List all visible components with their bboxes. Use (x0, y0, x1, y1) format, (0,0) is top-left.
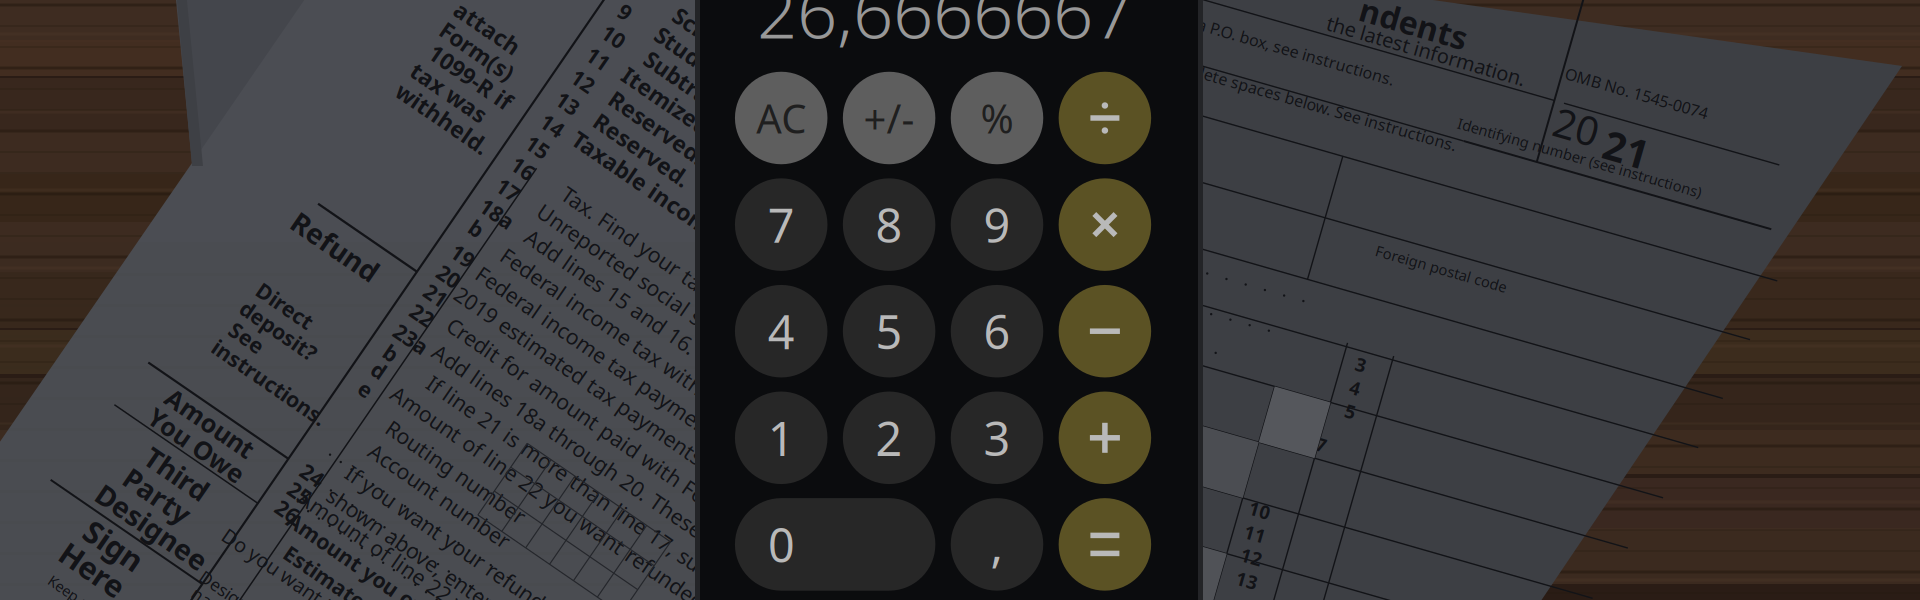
staticText: attach (450, 13, 525, 43)
staticText: 21 (1603, 122, 1649, 175)
staticText: Here (56, 549, 128, 590)
staticText: e (359, 375, 372, 403)
staticText: 5 (876, 300, 903, 362)
staticText: Amount (159, 406, 261, 440)
staticText: /county (1140, 118, 1198, 139)
staticText: ve a P.O. box, see instructions. (1173, 38, 1398, 59)
staticText: Taxable income. S (557, 178, 758, 208)
button[interactable]: Zero (735, 498, 935, 591)
staticText: instructions. (202, 368, 336, 397)
staticText: 1099-R if (423, 62, 519, 92)
staticText: , (990, 513, 1003, 575)
button[interactable]: Six (951, 285, 1043, 377)
staticText: o complete spaces below. See instruction… (1139, 90, 1462, 112)
staticText: Form(s) (435, 36, 520, 66)
staticText: deposit? (235, 316, 323, 344)
button[interactable]: One (735, 391, 827, 484)
staticText: % (980, 91, 1013, 144)
staticText: 26,6666667 (757, 0, 1133, 58)
staticText: Unreported social secu (519, 260, 750, 288)
staticText: the latest information. (1323, 37, 1529, 64)
staticText: 15 (526, 133, 550, 161)
staticText: 1 (768, 407, 795, 469)
staticText: 0 (768, 513, 795, 575)
staticText: Add lines 15 and 16. Thi (506, 288, 746, 316)
staticText: Reserved. (601, 112, 712, 142)
button[interactable]: Decimal separator (951, 498, 1043, 591)
staticText: 8 (876, 194, 903, 256)
staticText: Amount of line 22 you want refunded to y… (355, 499, 788, 528)
staticText: 9 (619, 0, 631, 26)
staticText: Federal income tax withheld (478, 319, 763, 348)
staticText: 24 (300, 461, 324, 489)
staticText: 11 (586, 45, 610, 73)
button[interactable]: Percent (951, 72, 1043, 164)
button[interactable]: Two (843, 391, 935, 484)
button[interactable]: Plus (1059, 391, 1151, 484)
button[interactable]: Equals (1059, 498, 1151, 591)
staticText: 26 (275, 497, 299, 525)
staticText: 4 (1350, 375, 1361, 400)
staticText: Keep a (46, 582, 92, 600)
staticText: 18a (479, 199, 516, 228)
button[interactable]: Multiply (1059, 178, 1151, 271)
staticText: Estimated tax pe (270, 587, 449, 600)
button[interactable]: Four (735, 285, 827, 377)
staticText: 3 (983, 407, 1010, 469)
staticText: Identifying number (see instructions) (1453, 148, 1706, 167)
staticText: AC (756, 91, 806, 144)
staticText: You Owe (141, 428, 252, 462)
staticText: Amount of line 22 you want (276, 560, 555, 588)
staticText: shown above, enter that address here (296, 586, 675, 600)
staticText: b (384, 339, 397, 367)
staticText: Party (120, 477, 195, 514)
button[interactable]: Minus (1059, 285, 1151, 377)
staticText: 20 (1554, 100, 1600, 153)
staticText: 25 (288, 479, 312, 507)
staticText: Federal income tax payments and a (447, 358, 805, 387)
staticText: Tax. Find your tax in (546, 234, 748, 263)
staticText: 2019 estimated tax payments with Form (421, 392, 827, 420)
staticText: name (189, 593, 236, 600)
staticText: 12 (1241, 544, 1263, 569)
button[interactable]: Seven (735, 178, 827, 271)
staticText: 5 (1345, 399, 1356, 424)
staticText: Amount you owe. Su (270, 565, 489, 593)
staticText: Scho (671, 13, 724, 43)
staticText: b (470, 214, 483, 243)
staticText: Reserved. (586, 135, 697, 165)
staticText: 23a (392, 325, 429, 353)
staticText: If line 21 is more than line 17, subtrac… (391, 488, 821, 516)
staticText: 2 (876, 407, 903, 469)
staticText: atement. (1081, 279, 1155, 302)
button[interactable]: Eight (843, 178, 935, 271)
staticText: Designee' (194, 586, 275, 600)
button[interactable]: Plus minus (843, 72, 935, 164)
staticText: 22 (410, 301, 434, 329)
staticText: Direct (253, 291, 317, 320)
staticText: +/- (864, 91, 915, 144)
staticText: 14 (540, 111, 564, 140)
staticText: Designee (87, 508, 216, 546)
staticText: If you want your refund check mailed (315, 562, 689, 590)
staticText: 11 (1244, 521, 1266, 546)
staticText: 10 (602, 22, 626, 51)
staticText: 12 (571, 67, 595, 95)
button[interactable]: Three (951, 391, 1043, 484)
staticText: ndents (1358, 2, 1469, 45)
button[interactable]: Nine (951, 178, 1043, 271)
staticText: 17 (496, 176, 520, 204)
staticText: 9 (983, 194, 1010, 256)
staticText: Account number (356, 482, 523, 510)
staticText: Credit for amount paid with Form (419, 404, 758, 433)
staticText: 7 (768, 194, 795, 256)
button[interactable]: All clear (735, 72, 827, 164)
button[interactable]: Five (843, 285, 935, 377)
button[interactable]: Divide (1059, 72, 1151, 164)
staticText: d (372, 356, 385, 384)
staticText: 6 (983, 300, 1010, 362)
staticText: See (228, 324, 266, 352)
staticText: Routing number (374, 458, 539, 486)
staticText: t alien (1123, 181, 1173, 204)
staticText: Subtract li (636, 74, 753, 104)
